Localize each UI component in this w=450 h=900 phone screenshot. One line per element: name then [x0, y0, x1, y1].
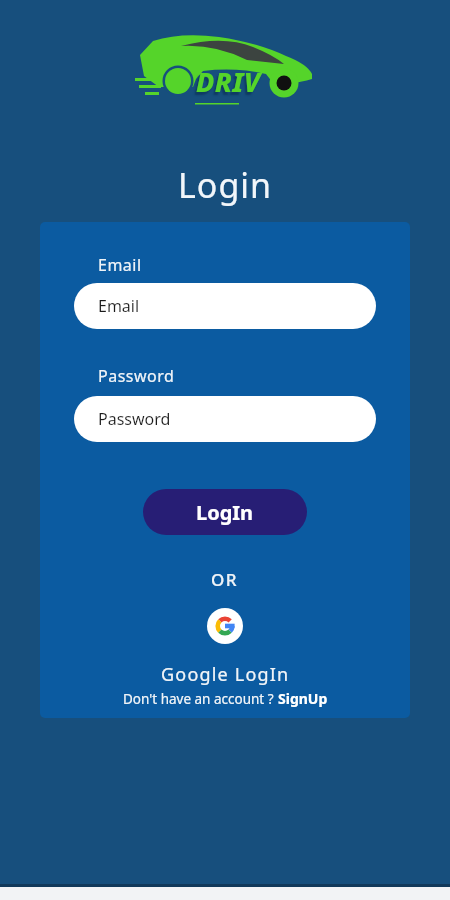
- button[interactable]: LogIn: [143, 489, 307, 535]
- staticText: Password: [98, 408, 171, 430]
- staticText: Email: [98, 254, 142, 276]
- staticText: SignUp: [278, 689, 328, 708]
- staticText: Password: [98, 365, 175, 387]
- staticText: Google LogIn: [161, 662, 290, 687]
- staticText: DRIV: [196, 63, 261, 100]
- staticText: Email: [98, 295, 140, 317]
- staticText: LogIn: [196, 499, 254, 526]
- button[interactable]: Don't have an account ?: [123, 689, 328, 708]
- button[interactable]: Password: [74, 396, 376, 442]
- staticText: OR: [211, 568, 239, 591]
- staticText: Login: [178, 162, 273, 208]
- button[interactable]: [207, 608, 243, 644]
- button[interactable]: Email: [74, 283, 376, 329]
- staticText: Don't have an account ?: [123, 690, 278, 708]
